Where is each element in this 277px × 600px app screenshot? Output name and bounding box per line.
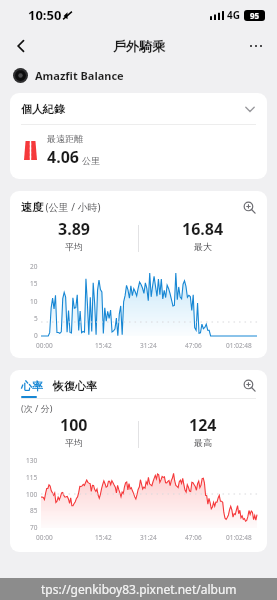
staticText: 01:02:48: [226, 533, 252, 542]
staticText: 4G: [227, 8, 240, 22]
staticText: 15: [30, 279, 38, 288]
staticText: (公里 / 小時): [43, 200, 101, 214]
staticText: 20: [30, 262, 38, 271]
staticText: 31:24: [140, 533, 157, 542]
staticText: 47:06: [185, 341, 202, 350]
staticText: Amazfit Balance: [35, 68, 124, 83]
staticText: 速度: [21, 200, 43, 214]
staticText: 心率: [21, 379, 43, 393]
button[interactable]: Amazfit Balance: [0, 62, 277, 88]
button[interactable]: Expand chart: [243, 379, 256, 392]
staticText: 15:42: [95, 533, 112, 542]
staticText: 10:50: [28, 6, 62, 24]
staticText: 01:02:48: [226, 341, 252, 350]
staticText: 最高: [194, 437, 212, 448]
staticText: 10: [30, 297, 38, 306]
staticText: 95: [250, 10, 260, 21]
staticText: 85: [30, 506, 38, 515]
staticText: tps://genkiboy83.pixnet.net/album: [41, 581, 237, 597]
staticText: 5: [34, 314, 38, 323]
staticText: 4.06: [47, 146, 79, 168]
staticText: 31:24: [140, 341, 157, 350]
staticText: 個人紀錄: [21, 102, 65, 116]
button[interactable]: Back: [6, 31, 36, 61]
staticText: 00:00: [36, 533, 53, 542]
staticText: 70: [30, 523, 38, 532]
staticText: 16.84: [182, 218, 224, 240]
staticText: 15:42: [95, 341, 112, 350]
staticText: 公里: [82, 155, 100, 166]
button[interactable]: More options: [241, 31, 271, 61]
staticText: 47:06: [185, 533, 202, 542]
staticText: 最大: [194, 241, 212, 252]
staticText: 130: [26, 456, 38, 465]
other: Collapse: [244, 103, 256, 115]
staticText: 最遠距離: [47, 133, 83, 144]
staticText: 3.89: [58, 218, 90, 240]
staticText: 戶外騎乘: [113, 38, 165, 54]
staticText: 124: [189, 414, 217, 436]
button[interactable]: 個人紀錄: [10, 93, 267, 124]
staticText: 0: [34, 331, 38, 340]
staticText: (次 / 分): [21, 402, 53, 414]
staticText: 平均: [65, 241, 83, 252]
button[interactable]: 恢復心率: [53, 379, 97, 393]
staticText: 115: [26, 473, 38, 482]
staticText: 100: [60, 414, 88, 436]
staticText: 100: [26, 490, 38, 499]
button[interactable]: 心率: [21, 379, 43, 398]
staticText: 00:00: [36, 341, 53, 350]
staticText: 平均: [65, 437, 83, 448]
button[interactable]: Expand chart: [243, 201, 256, 214]
